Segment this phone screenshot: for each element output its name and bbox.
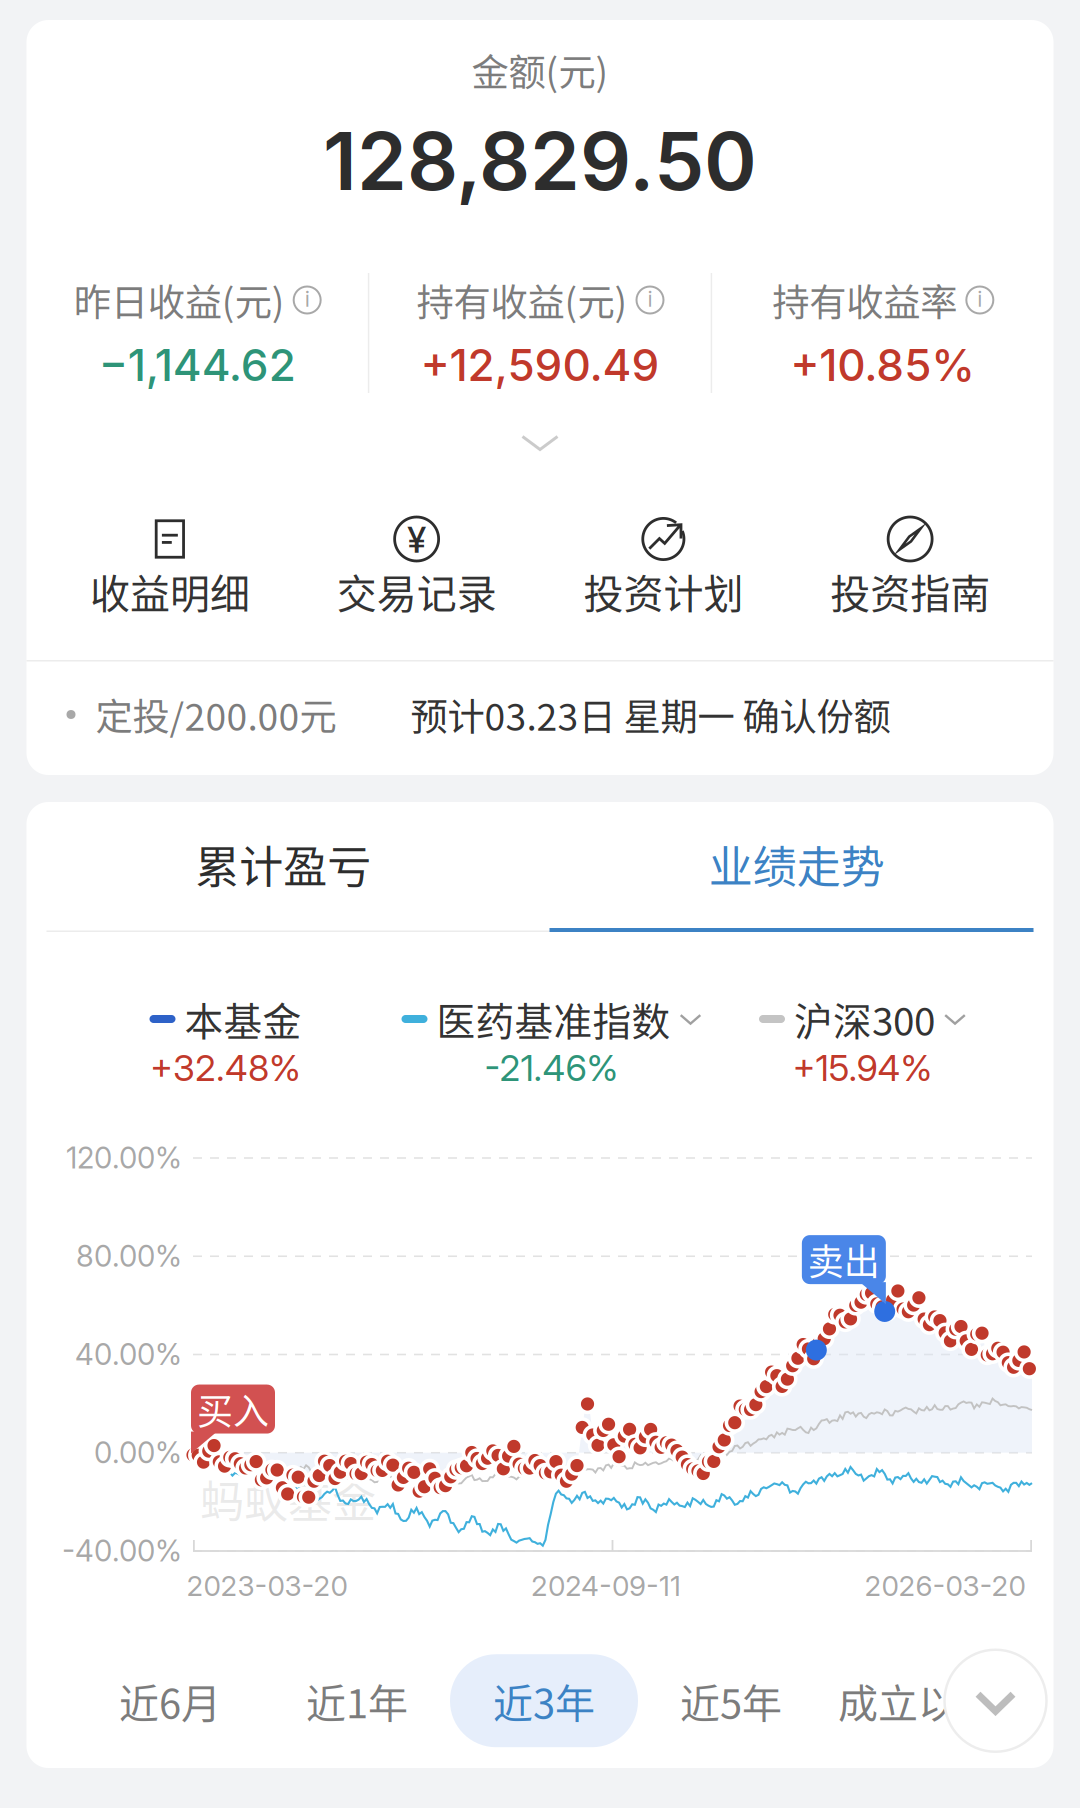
- button[interactable]: 累计盈亏: [26, 802, 540, 928]
- staticText: -40.00%: [62, 1533, 182, 1568]
- staticText: −1,144.62: [99, 338, 296, 392]
- staticText: 80.00%: [76, 1238, 182, 1274]
- staticText: -21.46%: [484, 1046, 618, 1090]
- staticText: 昨日收益(元): [74, 273, 285, 327]
- staticText: 持有收益率: [772, 273, 957, 327]
- staticText: 定投/200.00元: [95, 687, 336, 742]
- staticText: +10.85%: [790, 338, 975, 392]
- button[interactable]: 近6月: [76, 1654, 264, 1747]
- staticText: 120.00%: [66, 1140, 182, 1175]
- staticText: 卖出: [808, 1233, 880, 1286]
- staticText: 本基金: [184, 991, 301, 1047]
- staticText: 40.00%: [75, 1336, 182, 1372]
- button[interactable]: 收益明细: [46, 516, 293, 612]
- staticText: 投资计划: [583, 562, 743, 620]
- button[interactable]: 收起: [944, 1650, 1046, 1752]
- staticText: 近3年: [493, 1672, 595, 1730]
- staticText: 收益明细: [90, 562, 250, 620]
- staticText: 2023-03-20: [186, 1569, 347, 1603]
- button[interactable]: 定投/200.00元: [26, 661, 1053, 770]
- staticText: i: [647, 286, 652, 312]
- staticText: i: [977, 286, 982, 312]
- button[interactable]: 近3年: [450, 1654, 638, 1747]
- staticText: 预计03.23日 星期一 确认份额: [410, 687, 890, 742]
- staticText: 2024-09-11: [531, 1569, 681, 1603]
- button[interactable]: 业绩走势: [540, 802, 1053, 928]
- staticText: 投资指南: [830, 562, 990, 620]
- staticText: +32.48%: [150, 1046, 301, 1090]
- staticText: ¥: [407, 519, 426, 561]
- button[interactable]: 成立以来: [824, 1654, 1012, 1747]
- staticText: 蚂蚁基金: [200, 1467, 376, 1531]
- staticText: 近1年: [306, 1672, 408, 1730]
- button[interactable]: 近5年: [637, 1654, 825, 1747]
- staticText: 交易记录: [337, 562, 497, 620]
- button[interactable]: 沪深300: [759, 998, 966, 1086]
- staticText: 0.00%: [94, 1435, 182, 1470]
- button[interactable]: 投资指南: [787, 516, 1034, 612]
- button[interactable]: 本基金: [149, 998, 301, 1086]
- staticText: 成立以来: [838, 1672, 998, 1730]
- staticText: 累计盈亏: [195, 832, 371, 896]
- staticText: 沪深300: [794, 991, 935, 1047]
- button[interactable]: ¥: [293, 516, 540, 612]
- staticText: 持有收益(元): [416, 273, 627, 327]
- staticText: 近6月: [119, 1672, 221, 1730]
- staticText: +12,590.49: [420, 338, 659, 392]
- staticText: 买入: [197, 1383, 269, 1435]
- button[interactable]: 近1年: [263, 1654, 451, 1747]
- staticText: 业绩走势: [709, 832, 885, 896]
- staticText: +15.94%: [792, 1046, 932, 1090]
- button[interactable]: 医药基准指数: [401, 998, 701, 1086]
- staticText: 128,829.50: [323, 113, 757, 209]
- staticText: 2026-03-20: [864, 1569, 1025, 1603]
- button[interactable]: 投资计划: [540, 516, 787, 612]
- staticText: 近5年: [680, 1672, 782, 1730]
- staticText: i: [305, 286, 310, 312]
- staticText: 金额(元): [471, 43, 608, 97]
- staticText: 医药基准指数: [436, 991, 670, 1047]
